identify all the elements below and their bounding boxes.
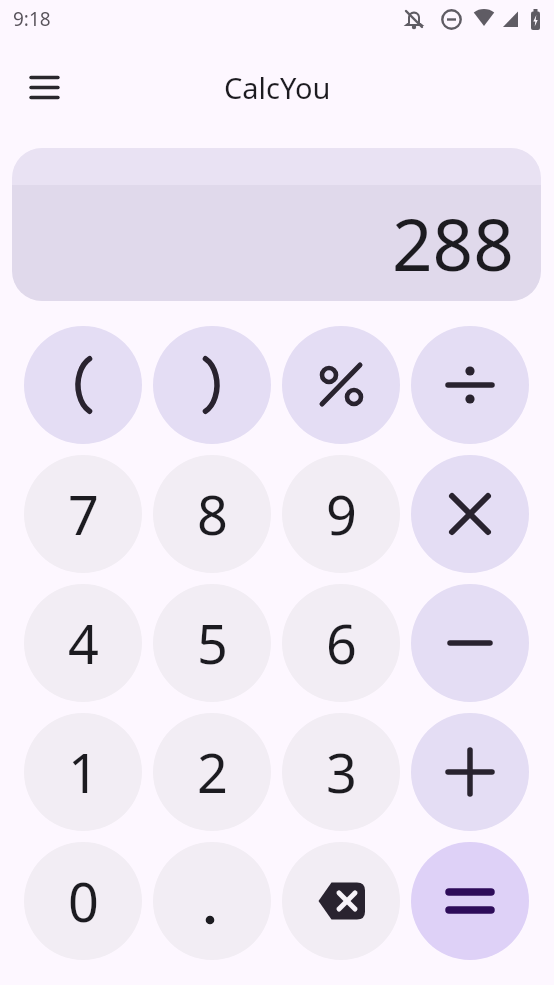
button[interactable] [20,63,68,111]
button[interactable] [153,842,271,960]
staticText: 4 [68,606,99,680]
staticText: 5 [197,606,228,680]
button[interactable]: 3 [282,713,400,831]
button[interactable]: 6 [282,584,400,702]
button[interactable] [411,326,529,444]
button[interactable]: 2 [153,713,271,831]
staticText: 0 [68,864,99,938]
staticText: CalcYou [224,68,331,107]
button[interactable] [411,584,529,702]
button[interactable] [411,842,529,960]
button[interactable] [282,842,400,960]
button[interactable] [153,326,271,444]
staticText: 2 [197,735,228,809]
button[interactable] [282,326,400,444]
staticText: 288 [392,195,514,292]
button[interactable]: 4 [24,584,142,702]
button[interactable] [411,455,529,573]
staticText: 1 [68,735,99,809]
button[interactable]: 7 [24,455,142,573]
button[interactable]: 8 [153,455,271,573]
staticText: 9 [326,477,357,551]
button[interactable]: 0 [24,842,142,960]
staticText: 9:18 [13,6,51,32]
button[interactable]: 1 [24,713,142,831]
staticText: 6 [326,606,357,680]
staticText: 7 [68,477,99,551]
staticText: 8 [197,477,228,551]
button[interactable] [411,713,529,831]
button[interactable]: 9 [282,455,400,573]
staticText: 3 [326,735,357,809]
button[interactable] [24,326,142,444]
button[interactable]: 5 [153,584,271,702]
